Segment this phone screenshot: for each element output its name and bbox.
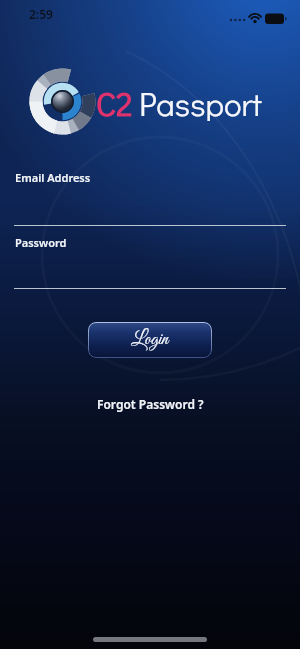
staticText: 2:59: [29, 6, 53, 22]
staticText: Email Address: [15, 170, 91, 185]
button[interactable]: Email Address: [14, 168, 286, 226]
staticText: Forgot Password ?: [97, 396, 204, 412]
staticText: Password: [15, 235, 67, 250]
button[interactable]: Password: [14, 233, 286, 289]
staticText: Login: [131, 328, 169, 352]
staticText: Passport: [139, 81, 262, 121]
staticText: C2: [96, 81, 133, 121]
button[interactable]: Login: [88, 322, 212, 358]
button[interactable]: Forgot Password ?: [91, 390, 210, 418]
